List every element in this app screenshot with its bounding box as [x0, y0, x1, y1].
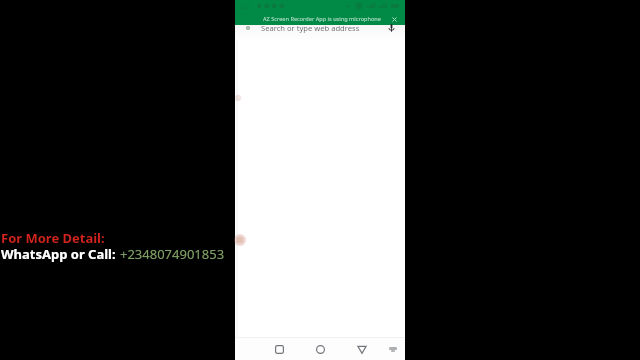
staticText: Search or type web address: [261, 23, 360, 33]
button[interactable]: Search or type web address: [235, 25, 405, 40]
button[interactable]: Home: [311, 340, 329, 358]
button[interactable]: Back: [353, 340, 371, 358]
button[interactable]: Recent apps: [270, 340, 288, 358]
button[interactable]: Hide keyboard: [385, 341, 401, 357]
staticText: AZ Screen Recorder App is using micropho…: [263, 15, 381, 23]
button[interactable]: Close notification: [388, 13, 400, 25]
staticText: For More Detail:: [1, 229, 105, 247]
staticText: +2348074901853: [120, 245, 225, 263]
button[interactable]: Voice search: [384, 21, 398, 35]
staticText: WhatsApp or Call:: [1, 245, 120, 263]
